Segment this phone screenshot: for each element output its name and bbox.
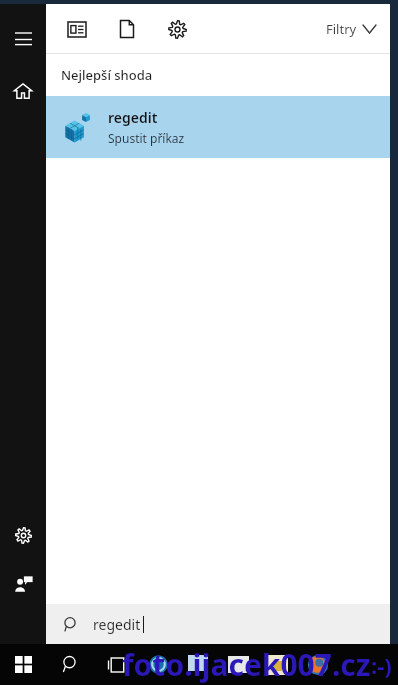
button[interactable]: Explorer xyxy=(218,644,258,685)
button[interactable]: Paint xyxy=(258,644,298,685)
button[interactable]: Account xyxy=(4,564,42,602)
button[interactable]: Filtry xyxy=(326,20,376,38)
button[interactable]: Task view xyxy=(94,644,138,685)
button[interactable]: Settings xyxy=(4,516,42,554)
button[interactable]: regedit xyxy=(46,96,390,158)
button[interactable]: Internet Explorer xyxy=(138,644,178,685)
button[interactable]: regedit xyxy=(46,604,390,644)
button[interactable]: Apps xyxy=(60,12,94,46)
button[interactable]: Firefox xyxy=(298,644,338,685)
staticText: regedit xyxy=(93,615,141,634)
button[interactable]: Search xyxy=(46,644,94,685)
button[interactable]: Store xyxy=(178,644,218,685)
staticText: Spustit příkaz xyxy=(108,130,185,146)
button[interactable]: Menu xyxy=(4,20,42,58)
staticText: Nejlepší shoda xyxy=(61,66,153,84)
staticText: regedit xyxy=(108,108,158,127)
staticText: :-) xyxy=(371,650,392,680)
button[interactable]: Documents xyxy=(110,12,144,46)
button[interactable]: Home xyxy=(4,72,42,110)
staticText: foto.ijacek007.cz xyxy=(122,644,371,685)
staticText: Filtry xyxy=(326,20,357,38)
button[interactable]: Start xyxy=(0,644,46,685)
button[interactable]: Settings xyxy=(160,12,194,46)
